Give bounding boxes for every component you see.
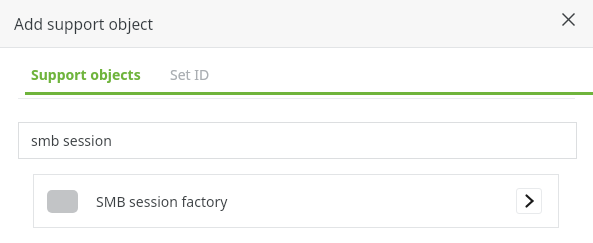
button[interactable]: SMB session factory [33,174,559,228]
staticText: Set ID [170,65,210,84]
staticText: smb session [31,131,112,150]
staticText: Support objects [31,65,141,84]
staticText: SMB session factory [96,192,228,211]
button[interactable]: Close [554,5,582,33]
staticText: Add support object [14,13,154,34]
button[interactable]: smb session [18,122,577,159]
button[interactable]: Support objects [25,56,593,100]
button[interactable]: Set ID [170,56,210,92]
button[interactable]: Open SMB session factory [516,188,542,214]
